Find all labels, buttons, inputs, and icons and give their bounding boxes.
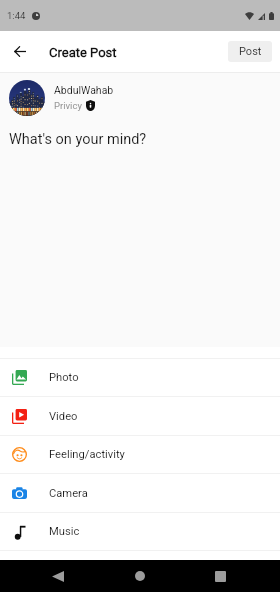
staticText: Privicy <box>54 100 82 111</box>
button[interactable]: Home <box>135 571 145 581</box>
button[interactable]: Post <box>228 41 272 62</box>
button[interactable]: Feeling/activity <box>0 436 280 473</box>
button[interactable]: Back <box>52 571 64 582</box>
button[interactable]: Recents <box>215 571 226 582</box>
staticText: AbdulWahab <box>54 84 114 96</box>
button[interactable]: Camera <box>0 474 280 512</box>
staticText: Feeling/activity <box>49 448 125 461</box>
button[interactable]: Video <box>0 397 280 435</box>
button[interactable]: Privicy <box>54 100 95 111</box>
button[interactable]: Photo <box>0 359 280 396</box>
staticText: Post <box>239 45 262 58</box>
button[interactable]: Music <box>0 513 280 550</box>
staticText: Camera <box>49 487 88 500</box>
staticText: 1:44 <box>7 10 26 21</box>
staticText: Music <box>49 525 80 538</box>
staticText: Video <box>49 410 78 423</box>
button[interactable]: Profile photo <box>9 80 45 116</box>
button[interactable]: Back <box>7 39 32 64</box>
staticText: What's on your mind? <box>9 131 147 148</box>
staticText: Create Post <box>49 45 117 60</box>
staticText: Photo <box>49 371 79 384</box>
